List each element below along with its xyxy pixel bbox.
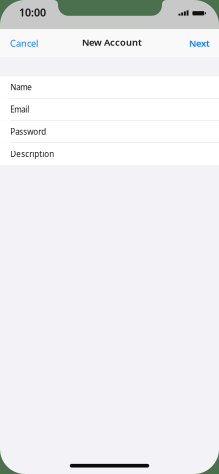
staticText: Next [189,37,210,49]
button[interactable]: Description [0,143,219,165]
staticText: 10:00 [19,5,46,19]
button[interactable]: Next [180,31,219,54]
button[interactable]: Cancel [0,31,47,54]
staticText: Cancel [10,37,38,49]
button[interactable]: Email [0,98,219,121]
staticText: Name [10,82,32,92]
button[interactable]: Name [0,76,219,98]
button[interactable]: Password [0,121,219,143]
staticText: Description [10,149,54,159]
staticText: New Account [82,36,142,48]
staticText: Email [10,104,29,115]
staticText: Password [10,126,46,137]
